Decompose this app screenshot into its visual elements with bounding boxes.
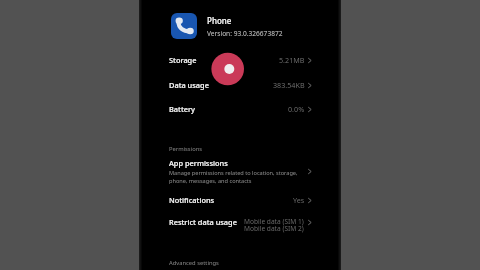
staticText: Version: 93.0.326673872 [207, 29, 283, 38]
staticText: Yes [293, 195, 305, 205]
staticText: Notifications [169, 195, 215, 205]
staticText: Storage [169, 55, 197, 65]
staticText: Advanced settings [169, 259, 219, 267]
other: Phone app icon [171, 13, 197, 39]
staticText: Restrict data usage [169, 217, 237, 227]
staticText: Mobile data (SIM 1) Mobile data (SIM 2) [244, 217, 304, 233]
button[interactable]: App permissions [139, 156, 341, 186]
staticText: Phone [207, 15, 232, 26]
staticText: 5.21MB [279, 55, 305, 65]
button[interactable]: Restrict data usage [139, 211, 341, 233]
staticText: Manage permissions related to location, … [169, 169, 298, 184]
staticText: App permissions [169, 158, 228, 168]
button[interactable]: Storage [139, 49, 341, 71]
button[interactable]: Battery [139, 98, 341, 120]
button[interactable]: Phone app icon [139, 10, 341, 42]
staticText: Battery [169, 104, 195, 114]
button[interactable]: Data usage [139, 74, 341, 96]
button[interactable]: Notifications [139, 189, 341, 211]
staticText: 383.54KB [273, 80, 305, 90]
staticText: Permissions [169, 145, 203, 153]
staticText: 0.0% [288, 104, 305, 114]
staticText: Data usage [169, 80, 209, 90]
